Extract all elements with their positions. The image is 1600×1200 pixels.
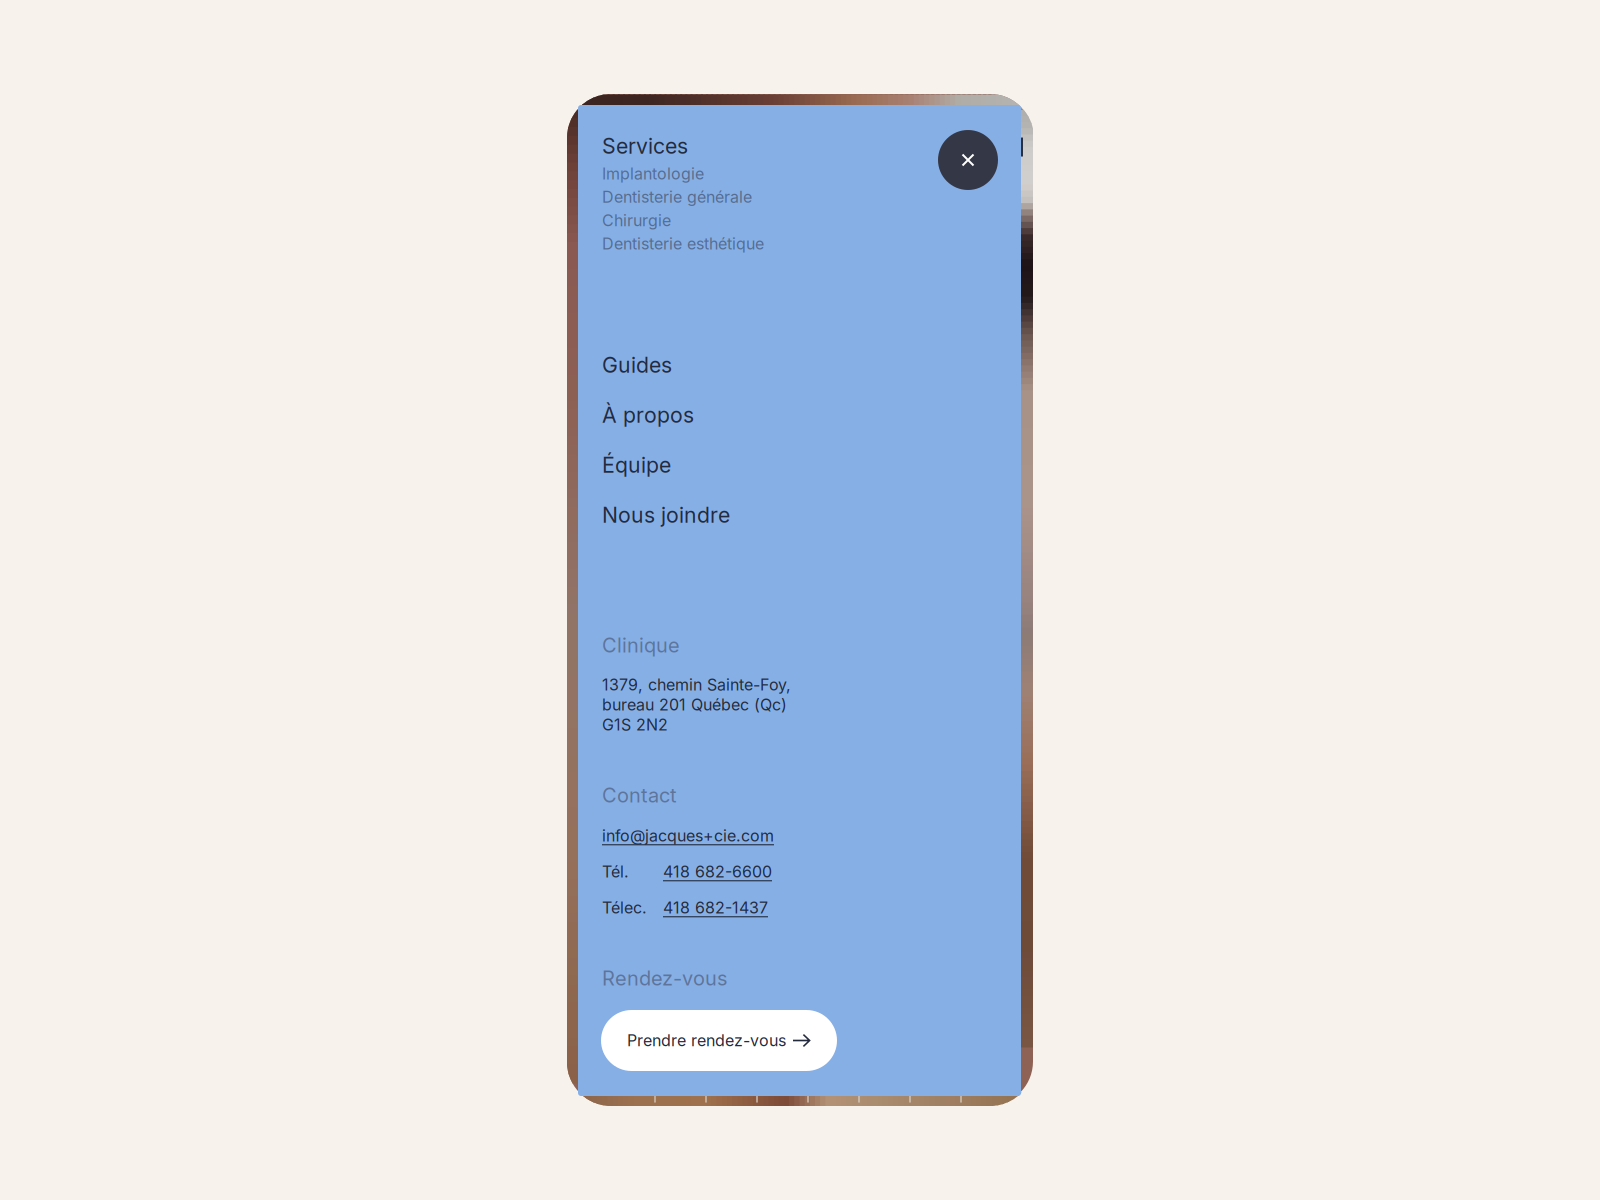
staticText: G1S 2N2 [602,715,668,734]
staticText: Clinique [602,633,680,657]
button[interactable]: 418 682-1437 [663,898,768,917]
button[interactable]: Dentisterie générale [602,187,752,207]
staticText: Nous joindre [602,502,730,528]
button[interactable]: Guides [602,352,672,378]
staticText: bureau 201 Québec (Qc) [602,695,787,714]
staticText: Contact [602,783,677,807]
staticText: Guides [602,352,672,378]
staticText: Prendre rendez-vous [627,1031,786,1050]
button[interactable]: 418 682-6600 [663,862,772,881]
staticText: 418 682-1437 [663,898,768,917]
button[interactable]: Services [602,133,688,159]
button[interactable]: Nous joindre [602,502,730,528]
staticText: Services [602,133,688,159]
staticText: Implantologie [602,164,704,183]
staticText: Dentisterie générale [602,187,752,207]
button[interactable]: Implantologie [602,164,704,183]
button[interactable]: Close menu [938,130,998,190]
staticText: Équipe [602,452,671,478]
staticText: 418 682-6600 [663,862,772,881]
staticText: À propos [602,402,694,428]
button[interactable]: info@jacques+cie.com [602,826,774,845]
staticText: Chirurgie [602,211,671,230]
staticText: Télec. [602,898,647,917]
staticText: Dentisterie esthétique [602,234,764,253]
button[interactable]: Équipe [602,452,671,478]
staticText: info@jacques+cie.com [602,826,774,845]
staticText: 1379, chemin Sainte-Foy, [602,675,791,694]
staticText: Tél. [602,862,629,881]
button[interactable]: Prendre rendez-vous [601,1010,837,1071]
button[interactable]: Dentisterie esthétique [602,234,764,253]
staticText: Rendez-vous [602,966,727,990]
button[interactable]: Chirurgie [602,211,671,230]
button[interactable]: À propos [602,402,694,428]
